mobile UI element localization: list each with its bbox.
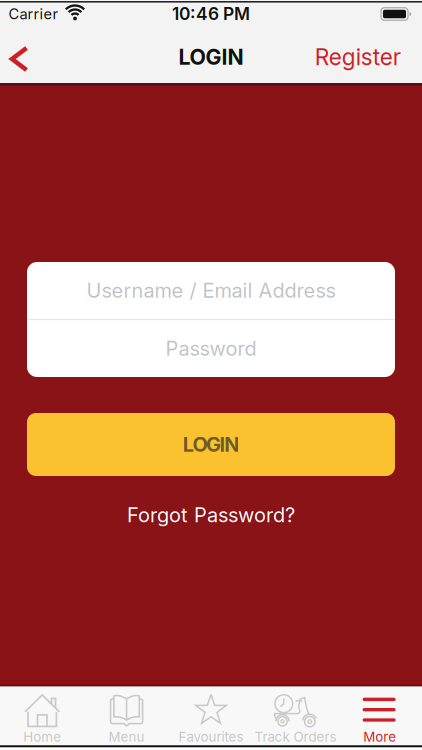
- staticText: More: [363, 729, 396, 745]
- button[interactable]: Back: [0, 37, 40, 81]
- button[interactable]: LOGIN: [27, 413, 395, 476]
- button[interactable]: Home: [0, 686, 84, 746]
- staticText: Password: [165, 337, 256, 360]
- button[interactable]: Menu: [84, 686, 169, 746]
- staticText: 10:46 PM: [172, 4, 250, 24]
- button[interactable]: More: [338, 686, 422, 746]
- button[interactable]: Forgot Password?: [127, 503, 295, 527]
- staticText: Home: [23, 729, 61, 745]
- button[interactable]: Register: [315, 44, 401, 70]
- staticText: LOGIN: [183, 433, 239, 456]
- button[interactable]: Favourites: [169, 686, 253, 746]
- staticText: Track Orders: [254, 729, 336, 745]
- staticText: Favourites: [178, 729, 243, 745]
- staticText: Register: [315, 44, 401, 70]
- button[interactable]: Username / Email Address: [27, 262, 395, 318]
- button[interactable]: Track Orders: [253, 686, 338, 746]
- button[interactable]: Password: [27, 320, 395, 376]
- staticText: LOGIN: [178, 44, 243, 70]
- staticText: Carrier: [8, 5, 58, 22]
- staticText: Forgot Password?: [127, 503, 295, 527]
- staticText: Username / Email Address: [86, 279, 335, 302]
- staticText: Menu: [109, 729, 145, 745]
